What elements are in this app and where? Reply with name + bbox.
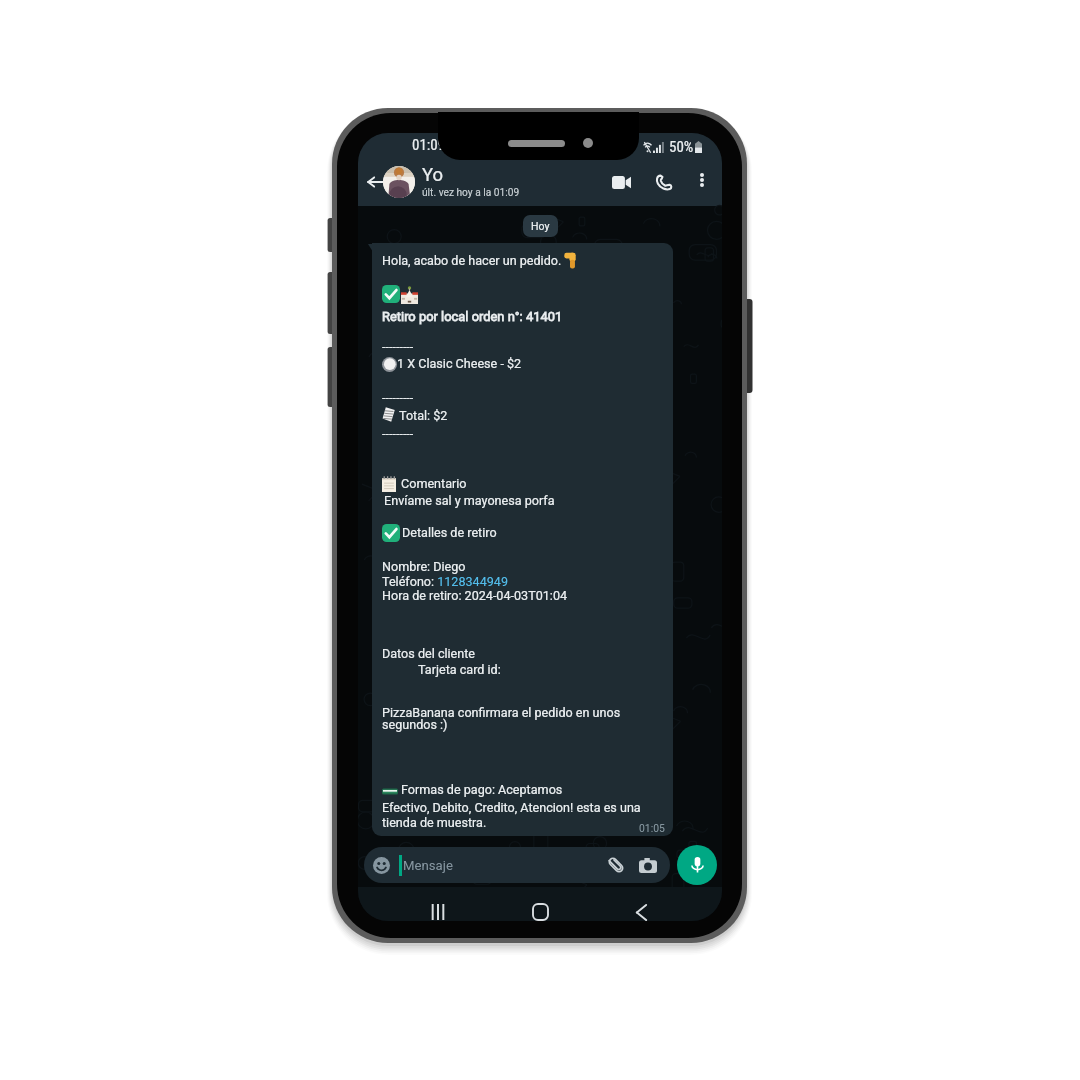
button[interactable]: Voice call [651,169,677,195]
staticText: tienda de muestra. [382,815,487,830]
staticText: --------- [382,339,414,354]
button[interactable]: More options [691,169,713,191]
button[interactable]: Back [362,169,388,195]
staticText: PizzaBanana confirmara el pedido en unos [382,705,621,720]
button[interactable]: Record voice message [677,845,717,885]
staticText: Retiro por local orden n°: 41401 [382,309,563,324]
button[interactable]: Video call [608,169,634,195]
button[interactable]: Mensaje [364,847,670,883]
staticText: 50% [669,138,694,156]
staticText: Hoy [531,220,550,232]
staticText: 1 X Clasic Cheese - $2 [397,356,522,371]
staticText: Datos del cliente [382,646,476,661]
staticText: Total: $2 [399,408,448,423]
staticText: Hora de retiro: 2024-04-03T01:04 [382,588,568,603]
button[interactable]: Attach file [606,855,626,875]
staticText: últ. vez hoy a la 01:09 [422,187,520,199]
staticText: Yo [422,164,444,186]
button[interactable]: Hola, acabo de hacer un pedido. [372,243,673,836]
button[interactable]: Camera [638,855,658,875]
staticText: --------- [382,426,414,441]
staticText: --------- [382,390,414,405]
staticText: Efectivo, Debito, Credito, Atencion! est… [382,800,641,815]
staticText: 01:09 [412,136,446,154]
button[interactable]: Home [522,895,558,921]
staticText: Detalles de retiro [402,525,497,540]
staticText: Envíame sal y mayonesa porfa [381,493,555,508]
staticText: Formas de pago: Aceptamos [401,782,563,797]
staticText: Tarjeta card id: [418,662,501,677]
staticText: Teléfono: 1128344949 [382,574,508,589]
button[interactable]: Hoy [523,215,558,237]
staticText: 01:05 [639,822,665,834]
staticText: Hola, acabo de hacer un pedido. [382,253,562,268]
button[interactable]: Recent apps [420,895,456,921]
button[interactable]: Back [623,895,659,921]
staticText: Nombre: Diego [382,559,466,574]
staticText: Mensaje [403,858,453,873]
staticText: segundos :) [382,717,448,732]
staticText: Comentario [401,476,467,491]
